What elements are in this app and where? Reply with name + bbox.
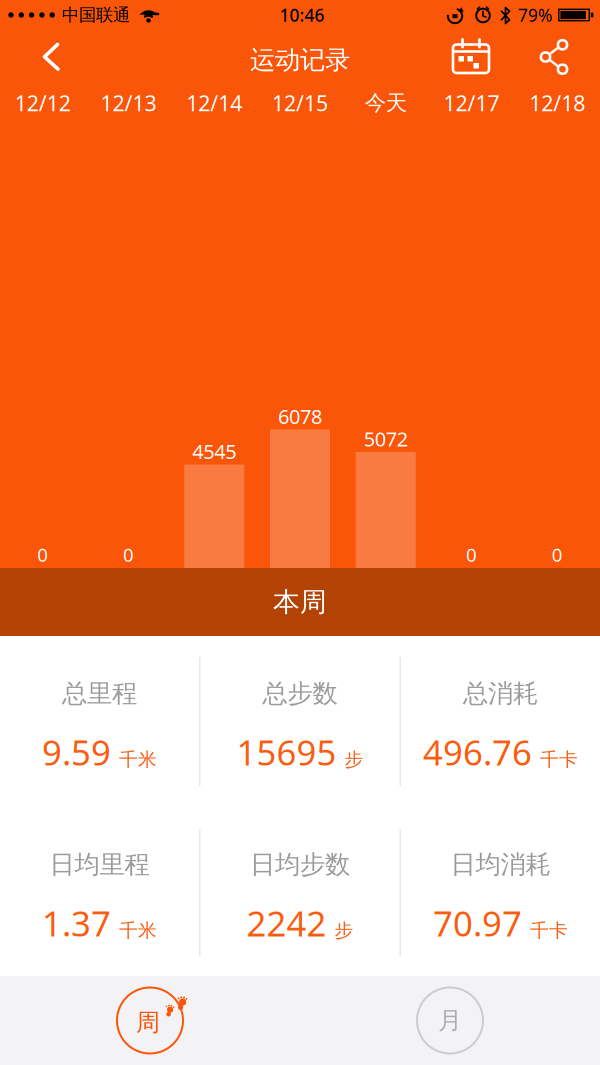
staticText: 日均步数 bbox=[250, 849, 350, 880]
staticText: 中国联通 bbox=[62, 4, 130, 26]
staticText: 运动记录 bbox=[250, 44, 350, 75]
button[interactable]: 12/17 bbox=[429, 84, 514, 122]
staticText: 千卡 bbox=[530, 919, 568, 942]
staticText: 12/18 bbox=[529, 89, 585, 117]
button[interactable]: 周 bbox=[0, 976, 300, 1065]
staticText: 9.59 bbox=[42, 729, 111, 775]
staticText: 1.37 bbox=[42, 900, 111, 946]
staticText: 6078 bbox=[278, 403, 322, 429]
button[interactable]: 12/13 bbox=[86, 84, 171, 122]
staticText: 2242 bbox=[246, 900, 326, 946]
staticText: 12/14 bbox=[186, 89, 242, 117]
staticText: 今天 bbox=[365, 90, 407, 116]
staticText: 5072 bbox=[364, 425, 408, 452]
staticText: 0 bbox=[552, 542, 563, 567]
button[interactable]: 12/12 bbox=[0, 84, 86, 122]
staticText: 0 bbox=[123, 542, 134, 567]
staticText: 496.76 bbox=[423, 729, 532, 775]
staticText: 12/12 bbox=[15, 89, 71, 117]
button[interactable]: 月 bbox=[300, 976, 600, 1065]
staticText: 70.97 bbox=[433, 900, 522, 946]
staticText: 步 bbox=[344, 748, 363, 771]
staticText: 日均里程 bbox=[49, 849, 149, 880]
staticText: 总消耗 bbox=[463, 678, 538, 709]
button[interactable]: Calendar bbox=[453, 30, 491, 84]
button[interactable]: 12/18 bbox=[514, 84, 600, 122]
staticText: 千米 bbox=[119, 919, 157, 942]
button[interactable]: 今天 bbox=[343, 84, 429, 122]
button[interactable]: 12/15 bbox=[257, 84, 343, 122]
staticText: 0 bbox=[466, 542, 477, 567]
button[interactable]: 12/14 bbox=[171, 84, 257, 122]
staticText: 0 bbox=[37, 542, 48, 567]
staticText: 周 bbox=[136, 1008, 160, 1037]
staticText: 12/15 bbox=[272, 89, 328, 117]
staticText: 10:46 bbox=[279, 3, 324, 26]
staticText: 15695 bbox=[236, 729, 336, 775]
staticText: 步 bbox=[334, 919, 353, 942]
staticText: 12/17 bbox=[443, 89, 499, 117]
staticText: 千卡 bbox=[540, 748, 578, 771]
staticText: 本周 bbox=[273, 586, 327, 618]
staticText: 12/13 bbox=[101, 89, 157, 117]
staticText: 总步数 bbox=[262, 678, 337, 709]
staticText: 千米 bbox=[119, 748, 157, 771]
staticText: 日均消耗 bbox=[450, 849, 550, 880]
staticText: 月 bbox=[438, 1006, 462, 1035]
button[interactable]: Share bbox=[491, 30, 600, 84]
staticText: 79% bbox=[518, 3, 552, 26]
staticText: 总里程 bbox=[62, 678, 137, 709]
button[interactable]: Back bbox=[0, 30, 66, 83]
staticText: 4545 bbox=[192, 438, 236, 464]
